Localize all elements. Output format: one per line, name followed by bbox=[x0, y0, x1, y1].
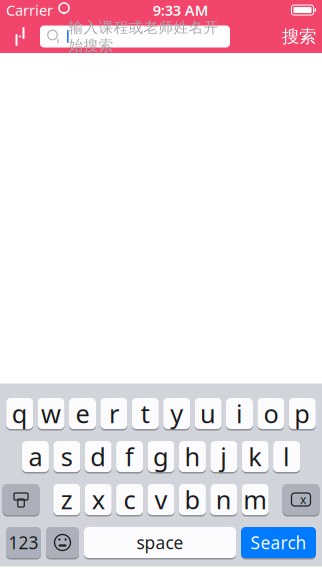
button[interactable]: k bbox=[242, 440, 269, 473]
button[interactable]: f bbox=[116, 440, 143, 473]
button[interactable]: p bbox=[289, 397, 316, 430]
staticText: s bbox=[61, 440, 73, 473]
button[interactable]: Shift bbox=[2, 483, 39, 516]
staticText: l bbox=[283, 440, 290, 473]
staticText: x bbox=[300, 491, 306, 507]
staticText: w bbox=[41, 397, 61, 430]
button[interactable]: y bbox=[163, 397, 190, 430]
staticText: Carrier bbox=[6, 0, 53, 20]
button[interactable]: s bbox=[53, 440, 80, 473]
staticText: r bbox=[109, 397, 119, 430]
staticText: u bbox=[200, 397, 216, 430]
button[interactable]: 123 bbox=[6, 526, 41, 559]
staticText: h bbox=[184, 440, 200, 473]
staticText: i bbox=[236, 397, 243, 430]
button[interactable]: i bbox=[226, 397, 253, 430]
button[interactable]: j bbox=[210, 440, 237, 473]
button[interactable]: a bbox=[22, 440, 49, 473]
staticText: m bbox=[243, 483, 267, 516]
staticText: t bbox=[141, 397, 150, 430]
staticText: Search bbox=[250, 531, 306, 554]
button[interactable]: v bbox=[147, 483, 174, 516]
button[interactable]: h bbox=[179, 440, 206, 473]
staticText: b bbox=[184, 483, 200, 516]
button[interactable]: Search bbox=[241, 526, 316, 559]
button[interactable]: o bbox=[257, 397, 284, 430]
button[interactable]: d bbox=[85, 440, 112, 473]
button[interactable]: t bbox=[132, 397, 159, 430]
button[interactable]: Back bbox=[0, 21, 40, 51]
staticText: v bbox=[154, 483, 167, 516]
button[interactable]: 搜索 bbox=[276, 21, 322, 51]
staticText: z bbox=[61, 483, 73, 516]
staticText: 输入课程或老师姓名开始搜索 bbox=[69, 18, 219, 54]
button[interactable]: c bbox=[116, 483, 143, 516]
staticText: c bbox=[124, 483, 136, 516]
button[interactable]: g bbox=[147, 440, 174, 473]
button[interactable]: space bbox=[84, 526, 236, 559]
staticText: n bbox=[216, 483, 232, 516]
staticText: k bbox=[248, 440, 262, 473]
staticText: 123 bbox=[8, 531, 38, 554]
staticText: 9:33 AM bbox=[153, 0, 209, 20]
staticText: p bbox=[294, 397, 310, 430]
staticText: 搜索 bbox=[282, 26, 316, 47]
staticText: g bbox=[153, 440, 169, 473]
staticText: j bbox=[220, 440, 227, 473]
staticText: d bbox=[90, 440, 106, 473]
staticText: f bbox=[125, 440, 134, 473]
button[interactable]: z bbox=[53, 483, 80, 516]
button[interactable]: u bbox=[195, 397, 222, 430]
button[interactable]: m bbox=[242, 483, 269, 516]
button[interactable]: n bbox=[210, 483, 237, 516]
staticText: a bbox=[28, 440, 42, 473]
button[interactable]: q bbox=[6, 397, 33, 430]
staticText: space bbox=[136, 531, 183, 554]
button[interactable]: w bbox=[38, 397, 65, 430]
button[interactable]: x bbox=[85, 483, 112, 516]
button[interactable]: r bbox=[100, 397, 127, 430]
button[interactable]: b bbox=[179, 483, 206, 516]
staticText: o bbox=[263, 397, 278, 430]
button[interactable]: Delete bbox=[282, 483, 319, 516]
button[interactable]: e bbox=[69, 397, 96, 430]
button[interactable]: Emoji bbox=[46, 526, 79, 559]
staticText: y bbox=[170, 397, 183, 430]
staticText: e bbox=[75, 397, 89, 430]
button[interactable]: Search field bbox=[40, 25, 230, 47]
staticText: x bbox=[92, 483, 105, 516]
staticText: q bbox=[12, 397, 28, 430]
button[interactable]: l bbox=[273, 440, 300, 473]
